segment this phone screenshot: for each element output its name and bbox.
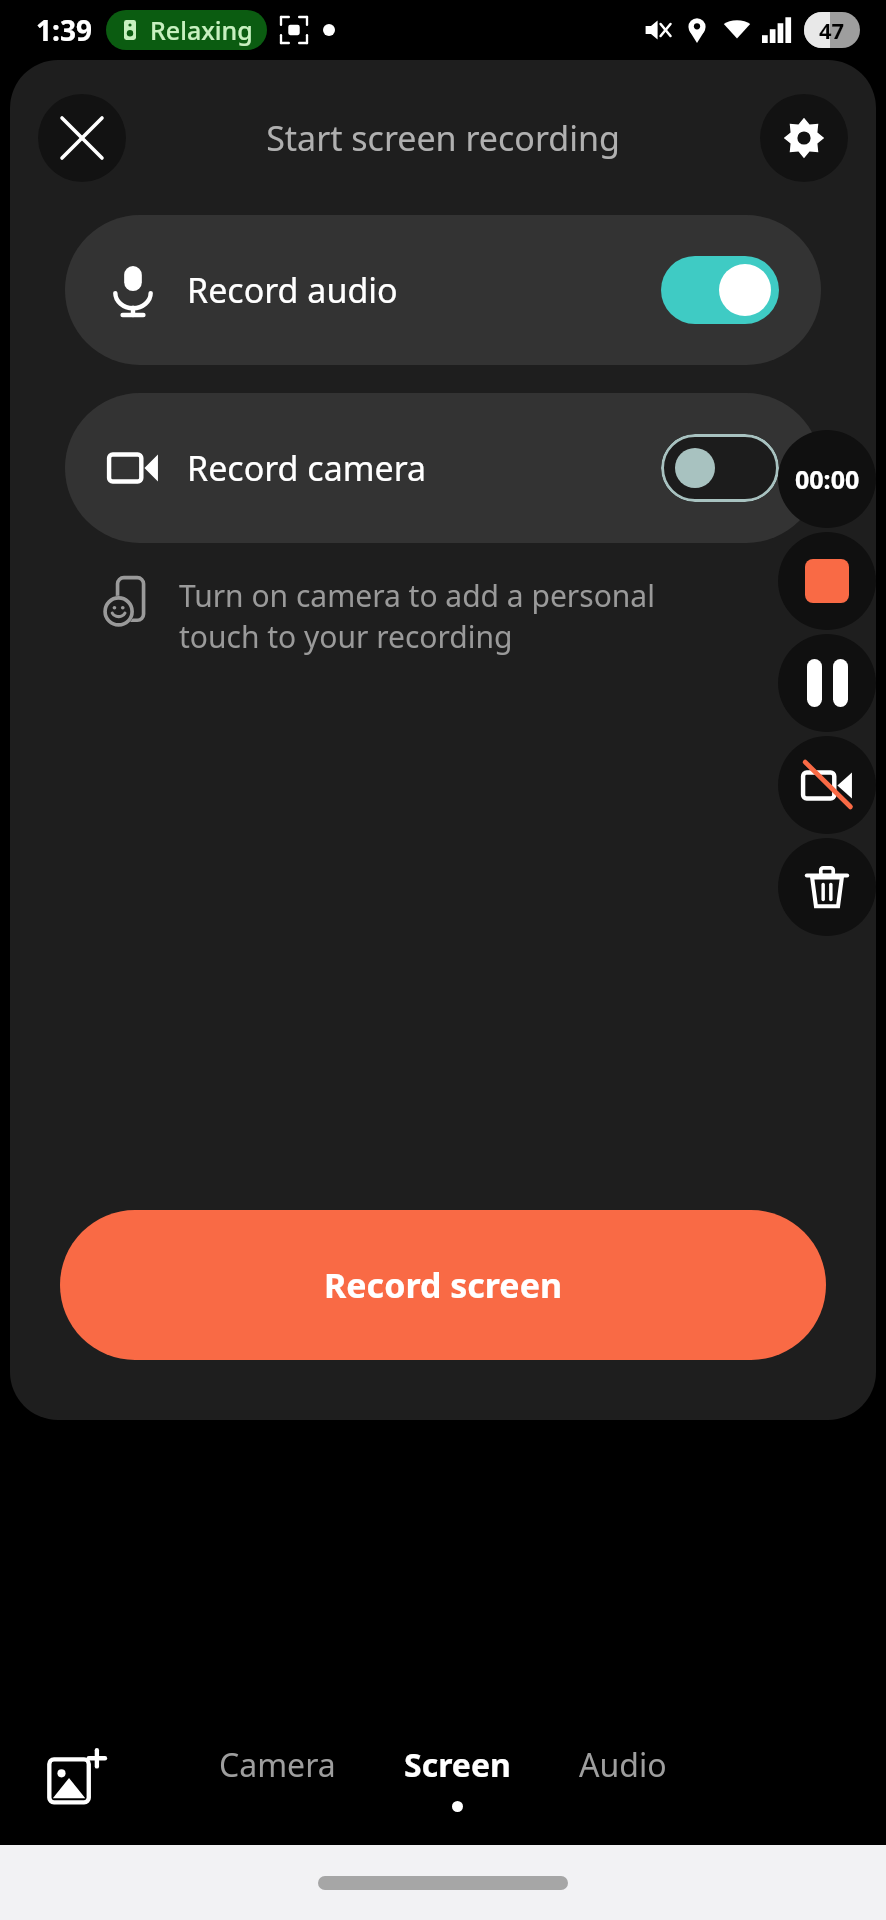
staticText: 00:00 xyxy=(795,462,860,496)
button[interactable]: Audio xyxy=(569,1737,677,1818)
staticText: Start screen recording xyxy=(266,115,620,161)
button[interactable]: Record camera xyxy=(65,393,821,543)
button[interactable]: Stop recording xyxy=(778,532,876,630)
staticText: Audio xyxy=(579,1743,667,1787)
button[interactable]: Close xyxy=(38,94,126,182)
staticText: 47 xyxy=(819,15,845,45)
button[interactable]: Delete recording xyxy=(778,838,876,936)
button[interactable]: Recording timer xyxy=(778,430,876,528)
button[interactable]: Toggle off xyxy=(661,434,779,502)
button[interactable]: Toggle on xyxy=(661,256,779,324)
staticText: Camera xyxy=(219,1743,336,1787)
staticText: Record audio xyxy=(187,267,398,313)
button[interactable]: Record screen xyxy=(60,1210,826,1360)
staticText: Record screen xyxy=(324,1262,563,1308)
button[interactable]: Record audio xyxy=(65,215,821,365)
staticText: Screen xyxy=(404,1743,511,1787)
staticText: touch to your recording xyxy=(179,616,513,657)
button[interactable]: Camera xyxy=(209,1737,346,1818)
button[interactable]: Turn camera off xyxy=(778,736,876,834)
staticText: Turn on camera to add a personal xyxy=(179,575,655,616)
button[interactable]: Settings xyxy=(760,94,848,182)
button[interactable]: Pause recording xyxy=(778,634,876,732)
staticText: Record camera xyxy=(187,445,427,491)
button[interactable]: Add media xyxy=(40,1742,112,1814)
button[interactable]: Screen xyxy=(394,1737,521,1818)
staticText: 1:39 xyxy=(36,11,92,49)
staticText: Relaxing xyxy=(150,13,253,47)
